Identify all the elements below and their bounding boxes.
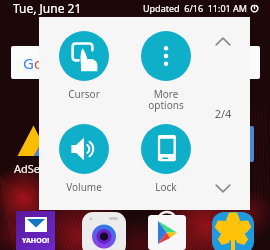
- staticText: Cursor: [68, 87, 100, 101]
- button[interactable]: Volume: [52, 124, 116, 194]
- staticText: g: [54, 53, 64, 73]
- button[interactable]: Lock: [134, 124, 198, 194]
- button[interactable]: Previous page: [207, 25, 239, 57]
- staticText: Volume: [66, 180, 102, 194]
- staticText: 2/4: [207, 106, 239, 121]
- button[interactable]: Maple app: [212, 212, 254, 250]
- button[interactable]: More options: [134, 31, 198, 112]
- staticText: G: [23, 53, 34, 73]
- staticText: Updated 6/16 11:01 AM: [143, 2, 247, 14]
- staticText: Tue, June 21: [13, 0, 82, 15]
- button[interactable]: Next page: [207, 172, 239, 204]
- button[interactable]: Cursor: [52, 31, 116, 101]
- staticText: e: [68, 53, 77, 73]
- staticText: More options: [148, 87, 184, 112]
- staticText: AdSe: [14, 161, 41, 176]
- button[interactable]: AdSe: [12, 122, 46, 178]
- button[interactable]: Camera: [82, 212, 126, 250]
- button[interactable]: Yahoo Mail: [16, 211, 55, 250]
- staticText: o: [34, 53, 44, 73]
- staticText: l: [64, 53, 68, 73]
- staticText: Lock: [155, 180, 177, 194]
- button[interactable]: Google search: [11, 46, 260, 79]
- button[interactable]: Play Store: [148, 212, 186, 250]
- staticText: YAHOO!: [22, 236, 50, 246]
